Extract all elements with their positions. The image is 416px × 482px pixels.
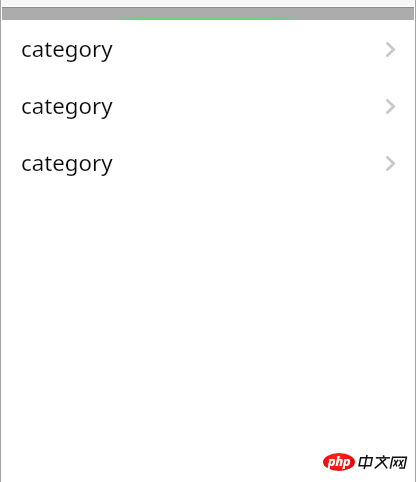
other: php中文网 [356,454,407,470]
staticText: category [21,147,113,177]
button[interactable]: category [2,134,414,191]
other: Open category [386,99,395,114]
staticText: category [21,33,113,63]
other: Open category [386,156,395,171]
button[interactable]: category [2,77,414,134]
other: Open category [386,42,395,57]
staticText: category [21,90,113,120]
staticText: php [328,453,351,470]
button[interactable]: category [2,20,414,77]
